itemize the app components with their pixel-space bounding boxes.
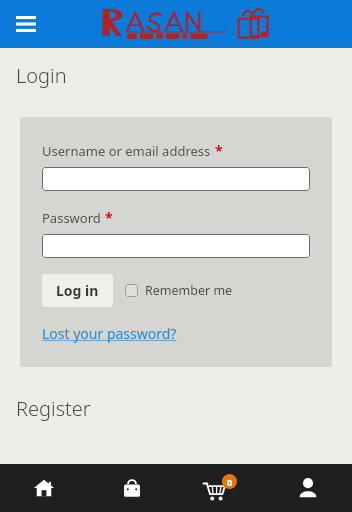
staticText: 0	[227, 476, 233, 488]
button[interactable]: Home	[0, 464, 88, 512]
staticText: Username or email address	[42, 142, 211, 160]
staticText: Password	[42, 209, 101, 227]
button[interactable]	[42, 234, 310, 258]
button[interactable]: Open navigation menu	[10, 8, 42, 40]
button[interactable]: Cart, 0 items	[176, 464, 264, 512]
staticText: Register	[16, 395, 91, 422]
staticText: Log in	[56, 281, 99, 300]
button[interactable]	[42, 167, 310, 191]
button[interactable]: Shop	[88, 464, 176, 512]
staticText: Remember me	[145, 282, 233, 299]
staticText: *	[215, 141, 223, 160]
staticText: *	[105, 208, 113, 227]
staticText: Login	[16, 62, 67, 89]
button[interactable]: Remember me	[125, 282, 233, 299]
staticText: Lost your password?	[42, 324, 177, 343]
button[interactable]: Account	[264, 464, 352, 512]
button[interactable]: Lost your password?	[42, 324, 177, 343]
button[interactable]: Log in	[42, 274, 113, 307]
